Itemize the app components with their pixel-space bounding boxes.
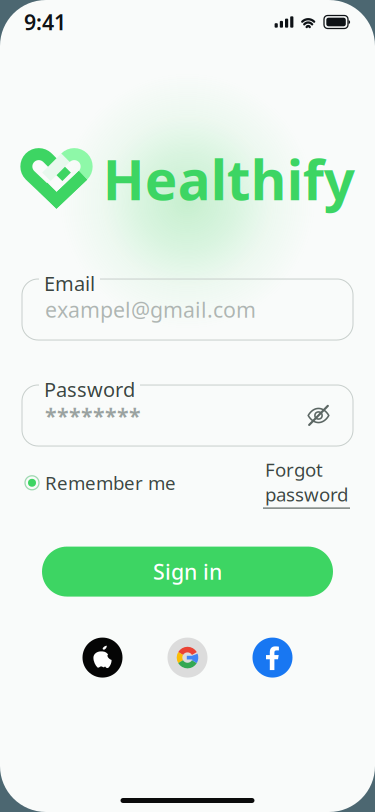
staticText: ********	[45, 401, 141, 430]
staticText: Healthify	[103, 143, 355, 215]
button[interactable]: Sign in with Apple	[82, 638, 122, 678]
staticText: Sign in	[153, 557, 222, 586]
button[interactable]: Sign in with Facebook	[252, 638, 292, 678]
button[interactable]: Forgot password	[263, 457, 350, 509]
staticText: exampel@gmail.com	[45, 295, 256, 324]
button[interactable]: Sign in	[42, 547, 333, 597]
staticText: 9:41	[24, 8, 66, 36]
staticText: Forgot password	[265, 457, 348, 507]
staticText: Remember me	[45, 470, 176, 495]
staticText: Email	[44, 270, 95, 297]
staticText: Password	[44, 376, 135, 403]
button[interactable]: Remember me	[25, 470, 176, 495]
button[interactable]: Sign in with Google	[167, 638, 207, 678]
